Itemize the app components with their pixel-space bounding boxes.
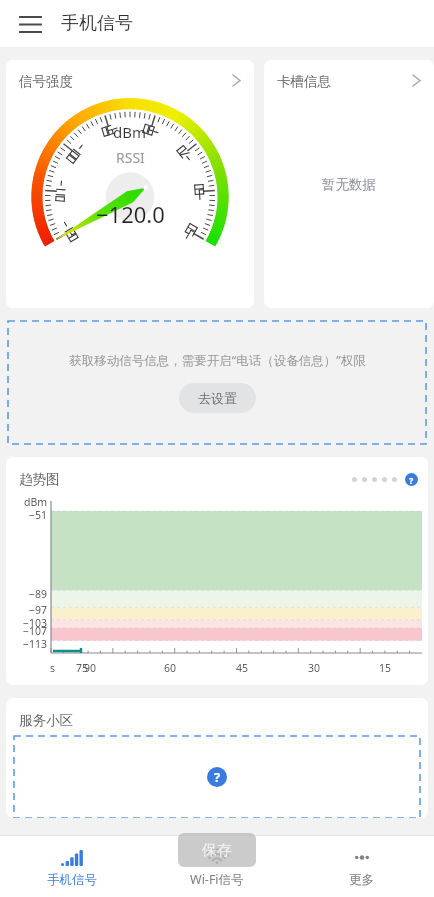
staticText: −89 (29, 587, 48, 601)
staticText: 15 (379, 661, 392, 675)
staticText: 90 (84, 661, 97, 675)
staticText: 保存 (202, 841, 232, 860)
staticText: 手机信号 (61, 12, 133, 35)
staticText: 卡槽信息 (277, 73, 331, 90)
staticText: 75 (76, 661, 89, 675)
staticText: ? (214, 768, 221, 786)
staticText: 趋势图 (19, 471, 60, 488)
button[interactable]: 卡槽信息 (264, 60, 434, 308)
staticText: 手机信号 (47, 872, 97, 888)
button[interactable]: 更多 (289, 836, 434, 897)
staticText: −120.0 (96, 199, 165, 229)
other: More (413, 75, 420, 86)
staticText: 服务小区 (19, 712, 73, 729)
staticText: 60 (164, 661, 177, 675)
staticText: 更多 (349, 872, 374, 888)
staticText: s (50, 661, 56, 675)
button[interactable]: 去设置 (179, 383, 256, 413)
button[interactable]: Help (405, 473, 418, 486)
other: More (233, 75, 240, 86)
staticText: 信号强度 (19, 73, 73, 90)
staticText: 45 (236, 661, 249, 675)
staticText: −97 (29, 603, 48, 617)
staticText: Wi-Fi信号 (190, 871, 244, 888)
staticText: dBm (113, 122, 147, 142)
staticText: 获取移动信号信息，需要开启“电话（设备信息）”权限 (69, 352, 366, 369)
staticText: 30 (308, 661, 321, 675)
button[interactable]: Help (207, 767, 227, 787)
staticText: −51 (29, 508, 48, 522)
button[interactable]: 手机信号 (0, 836, 144, 897)
staticText: dBm (24, 495, 48, 509)
staticText: ? (409, 474, 414, 486)
staticText: −103 (23, 616, 48, 630)
staticText: −113 (23, 637, 48, 651)
button[interactable]: Wi-Fi信号 (144, 836, 289, 897)
staticText: 暂无数据 (322, 176, 376, 193)
staticText: RSSI (116, 148, 145, 167)
staticText: 去设置 (198, 390, 237, 406)
button[interactable]: Menu (12, 6, 48, 42)
button[interactable]: 信号强度 (6, 60, 254, 308)
staticText: −107 (23, 624, 48, 638)
